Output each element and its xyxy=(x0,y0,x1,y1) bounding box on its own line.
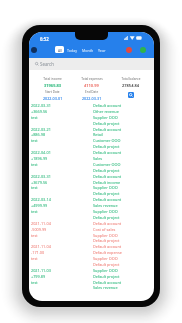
staticText: Cost of sales xyxy=(93,227,116,232)
staticText: Supplier OOO xyxy=(93,209,118,214)
button[interactable] xyxy=(29,243,154,267)
button[interactable] xyxy=(29,220,154,244)
staticText: Search xyxy=(40,61,54,67)
staticText: Default account xyxy=(93,127,122,132)
staticText: Month xyxy=(82,48,94,53)
staticText: Supplier OOO xyxy=(93,256,118,261)
staticText: Default project xyxy=(93,121,120,126)
staticText: +4999.99 xyxy=(31,203,48,208)
staticText: Year xyxy=(98,48,106,53)
staticText: Total expenses xyxy=(81,77,103,81)
staticText: 2021-11-04 xyxy=(31,244,51,249)
button[interactable]: Account xyxy=(31,47,37,53)
staticText: All xyxy=(58,48,62,52)
staticText: Default account xyxy=(93,103,122,108)
staticText: 4110.99 xyxy=(84,83,99,88)
staticText: Default project xyxy=(93,144,120,149)
staticText: Sales revenue xyxy=(93,285,118,290)
staticText: End Date xyxy=(85,90,99,94)
staticText: +886.98 xyxy=(31,132,46,137)
staticText: Supplier OOO xyxy=(93,233,118,238)
button[interactable]: Today xyxy=(67,47,77,54)
staticText: Start Date xyxy=(45,90,60,94)
staticText: test xyxy=(31,138,38,143)
button[interactable] xyxy=(29,149,154,173)
staticText: Default account xyxy=(93,221,122,226)
staticText: Default income xyxy=(93,180,121,185)
button[interactable]: Add expense xyxy=(126,47,132,53)
staticText: Customer OOO xyxy=(93,138,121,143)
staticText: 2022-03-31 xyxy=(31,103,51,108)
staticText: test xyxy=(31,233,38,238)
staticText: Sales xyxy=(93,156,103,161)
staticText: Total income xyxy=(43,77,62,81)
staticText: test xyxy=(31,185,38,190)
staticText: 27854.84 xyxy=(122,83,140,88)
button[interactable]: Search xyxy=(29,58,154,70)
staticText: Default project xyxy=(93,274,120,279)
staticText: Default project xyxy=(93,191,120,196)
staticText: Default account xyxy=(93,174,122,179)
staticText: 31965.83 xyxy=(44,83,62,88)
button[interactable] xyxy=(29,126,154,150)
staticText: test xyxy=(31,115,38,120)
staticText: 2022-04-01 xyxy=(31,150,51,155)
button[interactable]: Year xyxy=(98,47,106,54)
staticText: Default project xyxy=(93,238,120,243)
staticText: Today xyxy=(67,48,77,53)
staticText: Default account xyxy=(93,280,122,285)
staticText: 2022-03-14 xyxy=(31,197,51,202)
staticText: 2022-03-01 xyxy=(43,96,63,101)
staticText: Supplier OOO xyxy=(93,115,118,120)
staticText: Default project xyxy=(93,262,120,267)
staticText: Other revenue xyxy=(93,109,119,114)
staticText: -171.00 xyxy=(31,250,45,255)
button[interactable]: Search transactions xyxy=(128,92,134,98)
staticText: +3669.56 xyxy=(31,109,48,114)
staticText: Sales revenue xyxy=(93,203,118,208)
staticText: Supplier OOO xyxy=(93,185,118,190)
staticText: test xyxy=(31,162,38,167)
staticText: 6:52 xyxy=(40,36,49,42)
button[interactable] xyxy=(29,196,154,220)
staticText: test xyxy=(31,280,38,285)
staticText: 2021-11-03 xyxy=(31,268,51,273)
staticText: -5009.99 xyxy=(31,227,47,232)
staticText: +3679.56 xyxy=(31,180,48,185)
button[interactable] xyxy=(29,267,154,291)
staticText: test xyxy=(31,256,38,261)
staticText: test xyxy=(31,209,38,214)
staticText: +1896.99 xyxy=(31,156,48,161)
button[interactable]: Add income xyxy=(140,47,146,53)
staticText: Total balance xyxy=(121,77,141,81)
button[interactable]: All xyxy=(55,46,64,53)
staticText: +799.89 xyxy=(31,274,46,279)
staticText: Customer OOO xyxy=(93,162,121,167)
staticText: Default project xyxy=(93,215,120,220)
button[interactable]: Month xyxy=(82,47,94,54)
button[interactable] xyxy=(29,173,154,197)
staticText: Retail xyxy=(93,132,103,137)
staticText: 2022-03-31 xyxy=(31,174,51,179)
staticText: Default project xyxy=(93,168,120,173)
staticText: 2022-03-21 xyxy=(31,127,51,132)
button[interactable] xyxy=(29,102,154,126)
staticText: Default account xyxy=(93,150,122,155)
staticText: Default expense xyxy=(93,250,122,255)
staticText: 2021-11-04 xyxy=(31,221,51,226)
staticText: 2022-03-31 xyxy=(82,96,102,101)
staticText: Supplier OOO xyxy=(93,268,118,273)
staticText: Default account xyxy=(93,197,122,202)
staticText: Default account xyxy=(93,244,122,249)
